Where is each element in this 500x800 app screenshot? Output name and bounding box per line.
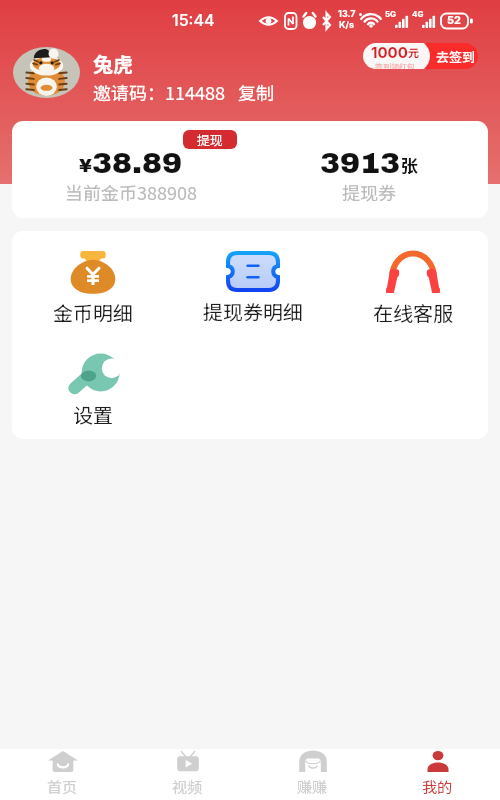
staticText: 兔虎 [93,49,133,78]
staticText: 38.89 [92,147,183,180]
staticText: 我的 [422,776,453,798]
staticText: 首页 [47,776,78,798]
staticText: 3913 [320,147,401,180]
staticText: 张 [401,152,418,177]
button[interactable]: 我的 [375,749,500,800]
staticText: K/s [339,19,355,30]
staticText: 去签到 [436,47,476,66]
staticText: 签到领红包 [375,61,415,69]
staticText: 5G [385,9,397,19]
staticText: 设置 [73,400,113,429]
staticText: 15:44 [172,10,215,29]
button[interactable]: 提现 [183,130,237,149]
button[interactable]: 复制 [238,79,274,105]
staticText: 13.7 [338,8,356,19]
button[interactable]: 视频 [125,749,250,800]
staticText: 赚赚 [297,776,328,798]
button[interactable]: 设置 [38,354,148,429]
button[interactable]: 金币明细 [38,251,148,327]
staticText: 提现券 [342,179,396,205]
staticText: 邀请码：114488 [93,79,225,105]
staticText: 1000 [371,43,408,61]
button[interactable]: 首页 [0,749,125,800]
staticText: 金币明细 [53,298,133,327]
staticText: 52 [447,13,461,26]
staticText: ¥ [79,155,92,176]
button[interactable]: 1000 [363,43,478,69]
staticText: 提现 [197,130,224,149]
staticText: 当前金币388908 [65,179,197,205]
staticText: 在线客服 [373,298,453,327]
button[interactable]: 在线客服 [358,251,468,327]
staticText: 元 [408,44,419,60]
staticText: 视频 [172,776,203,798]
staticText: 提现券明细 [203,297,303,326]
staticText: 4G [412,9,424,19]
button[interactable]: 提现券明细 [198,251,308,326]
button[interactable]: 赚赚 [250,749,375,800]
button[interactable]: Avatar [13,47,80,98]
